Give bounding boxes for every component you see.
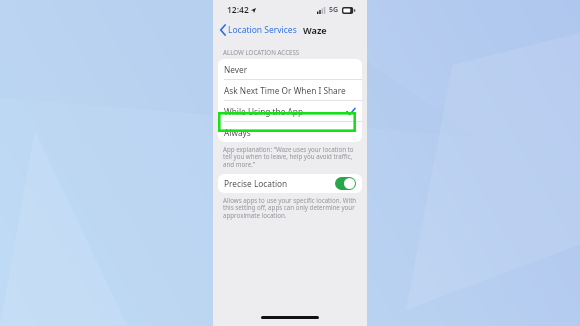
staticText: Allows apps to use your specific locatio… bbox=[223, 196, 357, 220]
other: Precise Location on bbox=[335, 177, 356, 190]
button[interactable]: Ask Next Time Or When I Share bbox=[218, 80, 362, 100]
staticText: 5G bbox=[329, 5, 339, 15]
staticText: ALLOW LOCATION ACCESS bbox=[223, 48, 300, 56]
staticText: Never bbox=[224, 64, 248, 75]
staticText: Waze bbox=[303, 24, 327, 36]
staticText: Always bbox=[224, 127, 251, 138]
button[interactable]: Precise Location bbox=[218, 174, 362, 193]
staticText: Ask Next Time Or When I Share bbox=[224, 85, 346, 96]
staticText: Location Services bbox=[228, 24, 297, 36]
button[interactable]: Always bbox=[218, 122, 362, 142]
button[interactable]: Never bbox=[218, 59, 362, 79]
staticText: App explanation: “Waze uses your locatio… bbox=[223, 145, 357, 169]
button[interactable]: While Using the App bbox=[218, 101, 362, 121]
staticText: Precise Location bbox=[224, 178, 288, 189]
staticText: 12:42 bbox=[227, 4, 249, 16]
staticText: While Using the App bbox=[224, 106, 303, 117]
button[interactable]: Back to Location Services bbox=[218, 22, 299, 38]
